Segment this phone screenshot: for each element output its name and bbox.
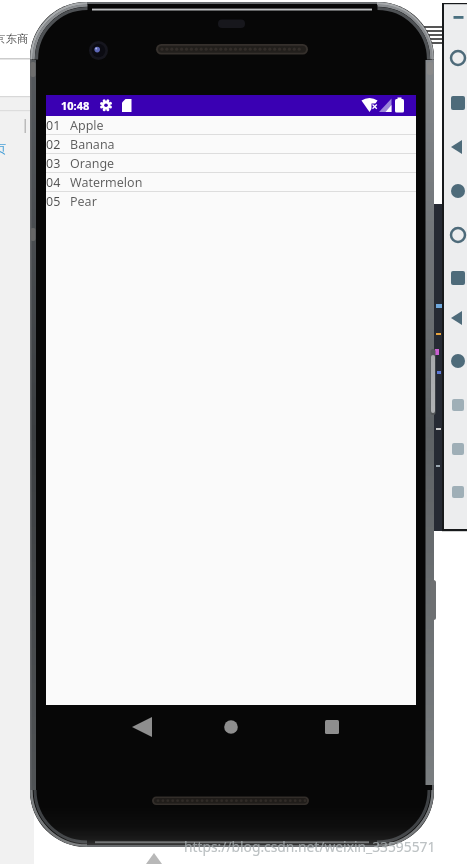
button[interactable] <box>318 713 346 741</box>
staticText: https://blog.csdn.net/weixin_33595571 <box>184 837 436 856</box>
staticText: Banana <box>70 136 115 153</box>
button[interactable] <box>216 713 246 741</box>
staticText: 页 <box>0 141 6 156</box>
staticText: Pear <box>70 193 97 210</box>
staticText: 京东商 <box>0 32 29 46</box>
staticText: 01 <box>46 117 61 134</box>
staticText: 02 <box>46 136 61 153</box>
staticText: Apple <box>70 117 104 134</box>
staticText: 05 <box>46 193 61 210</box>
staticText: Watermelon <box>70 174 143 191</box>
button[interactable]: 05 <box>46 192 416 210</box>
staticText: 03 <box>46 155 61 172</box>
button[interactable]: 02 <box>46 135 416 153</box>
button[interactable]: 01 <box>46 116 416 134</box>
button[interactable] <box>124 713 156 741</box>
button[interactable]: 03 <box>46 154 416 172</box>
staticText: 10:48 <box>61 98 90 113</box>
staticText: 04 <box>46 174 61 191</box>
button[interactable]: 04 <box>46 173 416 191</box>
staticText: Orange <box>70 155 115 172</box>
